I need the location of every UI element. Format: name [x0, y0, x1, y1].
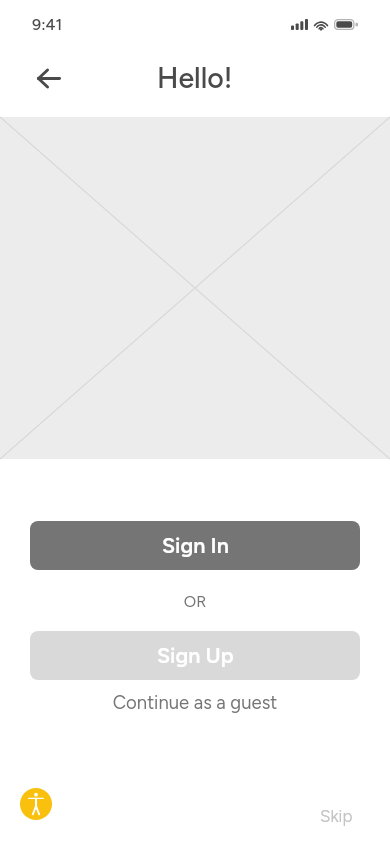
staticText: Hello! — [157, 61, 233, 95]
button[interactable]: Accessibility options — [20, 788, 52, 820]
staticText: Skip — [320, 806, 353, 826]
staticText: Sign Up — [157, 643, 234, 669]
staticText: 9:41 — [32, 15, 63, 34]
button[interactable]: Sign In — [30, 521, 360, 570]
staticText: OR — [0, 592, 390, 611]
staticText: Sign In — [162, 533, 229, 559]
button[interactable]: Skip — [312, 802, 361, 830]
staticText: Continue as a guest — [0, 691, 390, 713]
button[interactable]: Sign Up — [30, 631, 360, 680]
button[interactable]: Back — [26, 55, 72, 101]
